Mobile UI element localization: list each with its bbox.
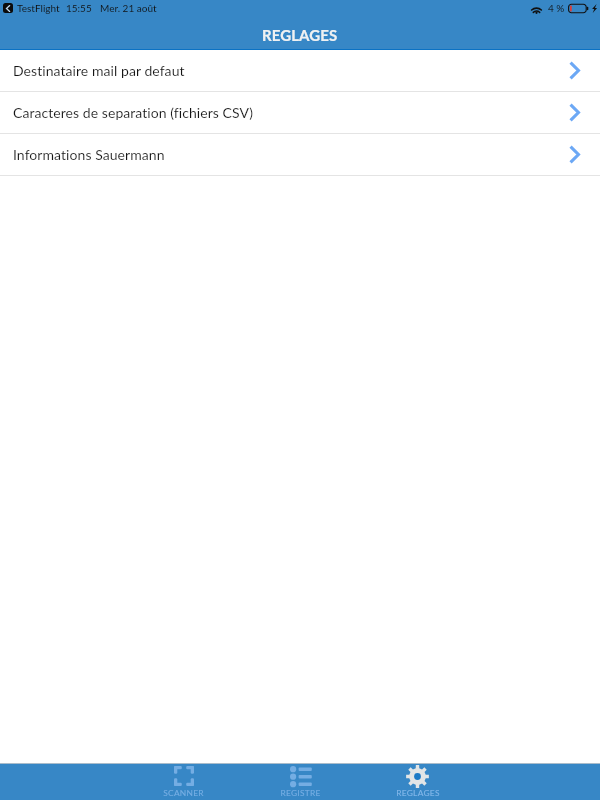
button[interactable]: Destinataire mail par defaut [0,50,600,91]
button[interactable]: REGLAGES [359,764,476,800]
staticText: Informations Sauermann [13,146,165,163]
staticText: REGLAGES [396,788,440,798]
staticText: SCANNER [163,788,204,798]
staticText: Destinataire mail par defaut [13,62,185,79]
button[interactable]: Back to TestFlight [3,3,13,13]
button[interactable]: REGISTRE [242,764,359,800]
staticText: Mer. 21 août [100,2,157,14]
staticText: TestFlight [17,2,60,14]
staticText: REGLAGES [262,26,338,44]
staticText: Caracteres de separation (fichiers CSV) [13,104,253,121]
staticText: REGISTRE [280,788,321,798]
button[interactable]: Caracteres de separation (fichiers CSV) [0,92,600,133]
button[interactable]: SCANNER [125,764,242,800]
staticText: 15:55 [66,2,92,14]
button[interactable]: Informations Sauermann [0,134,600,175]
staticText: 4 % [548,2,565,14]
